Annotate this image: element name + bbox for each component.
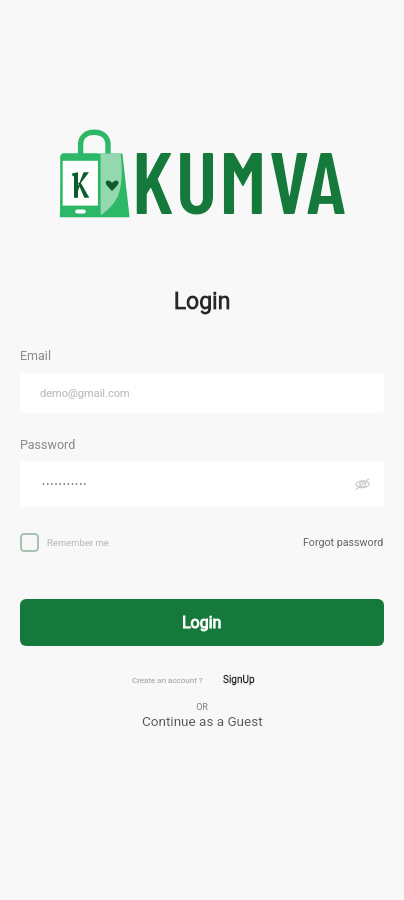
staticText: Continue as a Guest [142, 713, 263, 729]
button[interactable]: ••••••••••• [20, 461, 384, 507]
staticText: Remember me [47, 537, 109, 548]
button[interactable]: Forgot password [303, 536, 384, 549]
staticText: OR [0, 702, 404, 713]
button[interactable]: Continue as a Guest [0, 713, 404, 729]
staticText: Create an account ? [132, 676, 203, 685]
button[interactable]: SignUp [223, 674, 255, 686]
staticText: Password [20, 437, 76, 452]
button[interactable]: demo@gmail.com [20, 373, 384, 413]
staticText: Login [0, 288, 404, 315]
staticText: Email [20, 348, 51, 363]
button[interactable]: Login [20, 599, 384, 646]
button[interactable]: Show password [350, 472, 374, 496]
staticText: KUMVA [132, 127, 349, 231]
staticText: SignUp [223, 674, 255, 686]
staticText: ••••••••••• [42, 479, 88, 490]
button[interactable]: Remember me [20, 533, 109, 552]
staticText: Login [182, 613, 222, 632]
staticText: Forgot password [303, 536, 384, 549]
staticText: demo@gmail.com [40, 387, 130, 400]
